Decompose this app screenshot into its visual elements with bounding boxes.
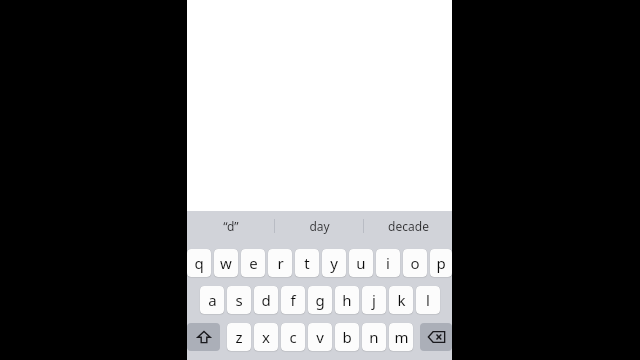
button[interactable]: x (254, 323, 278, 351)
button[interactable]: v (308, 323, 332, 351)
button[interactable]: j (362, 286, 386, 314)
button[interactable]: h (335, 286, 359, 314)
button[interactable]: n (362, 323, 386, 351)
button[interactable]: Backspace (420, 323, 452, 351)
button[interactable]: r (268, 249, 292, 277)
staticText: k (397, 290, 406, 310)
button[interactable]: p (430, 249, 452, 277)
button[interactable]: o (403, 249, 427, 277)
button[interactable]: q (187, 249, 211, 277)
staticText: day (309, 218, 330, 234)
button[interactable]: c (281, 323, 305, 351)
button[interactable]: y (322, 249, 346, 277)
button[interactable]: z (227, 323, 251, 351)
staticText: w (220, 253, 232, 273)
staticText: t (304, 253, 310, 273)
staticText: q (194, 253, 204, 273)
button[interactable]: g (308, 286, 332, 314)
staticText: y (330, 253, 338, 273)
button[interactable]: day (275, 211, 363, 241)
button[interactable]: t (295, 249, 319, 277)
button[interactable]: l (416, 286, 440, 314)
button[interactable]: f (281, 286, 305, 314)
staticText: j (372, 290, 376, 310)
staticText: “d” (223, 218, 239, 234)
staticText: a (208, 290, 217, 310)
staticText: c (289, 327, 297, 347)
staticText: f (290, 290, 296, 310)
button[interactable]: s (227, 286, 251, 314)
button[interactable]: decade (364, 211, 452, 241)
staticText: b (342, 327, 352, 347)
staticText: r (277, 253, 284, 273)
staticText: d (261, 290, 271, 310)
button[interactable]: Shift (187, 323, 220, 351)
staticText: i (386, 253, 390, 273)
staticText: o (410, 253, 420, 273)
staticText: u (356, 253, 366, 273)
staticText: m (394, 327, 409, 347)
staticText: e (249, 253, 258, 273)
button[interactable]: a (200, 286, 224, 314)
button[interactable]: b (335, 323, 359, 351)
staticText: l (426, 290, 430, 310)
staticText: z (235, 327, 243, 347)
staticText: g (315, 290, 325, 310)
staticText: n (369, 327, 379, 347)
staticText: v (316, 327, 324, 347)
button[interactable]: i (376, 249, 400, 277)
button[interactable]: u (349, 249, 373, 277)
button[interactable]: m (389, 323, 413, 351)
staticText: x (262, 327, 270, 347)
staticText: p (436, 253, 446, 273)
staticText: s (235, 290, 243, 310)
staticText: decade (388, 218, 429, 234)
button[interactable]: “d” (187, 211, 274, 241)
staticText: h (342, 290, 352, 310)
button[interactable]: w (214, 249, 238, 277)
button[interactable]: k (389, 286, 413, 314)
button[interactable]: d (254, 286, 278, 314)
button[interactable]: e (241, 249, 265, 277)
